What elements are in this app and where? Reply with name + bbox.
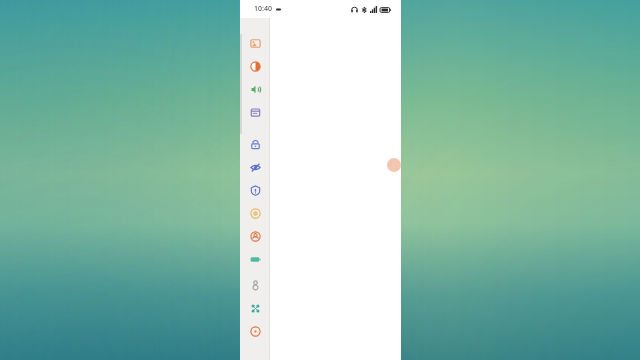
button[interactable]: Security	[240, 179, 270, 202]
button[interactable]: Apps	[240, 297, 270, 320]
button[interactable]: Sound	[240, 78, 270, 101]
staticText: 10:40	[254, 4, 272, 14]
button[interactable]: Notifications	[240, 101, 270, 124]
button[interactable]: Accounts	[240, 225, 270, 248]
button[interactable]: Display	[240, 55, 270, 78]
button[interactable]: Wallpaper	[240, 32, 270, 55]
button[interactable]: Lock screen	[240, 133, 270, 156]
button[interactable]: Battery	[240, 248, 270, 271]
button[interactable]: Storage	[240, 274, 270, 297]
button[interactable]: Location	[240, 202, 270, 225]
button[interactable]: More settings	[240, 320, 270, 343]
button[interactable]: Privacy	[240, 156, 270, 179]
